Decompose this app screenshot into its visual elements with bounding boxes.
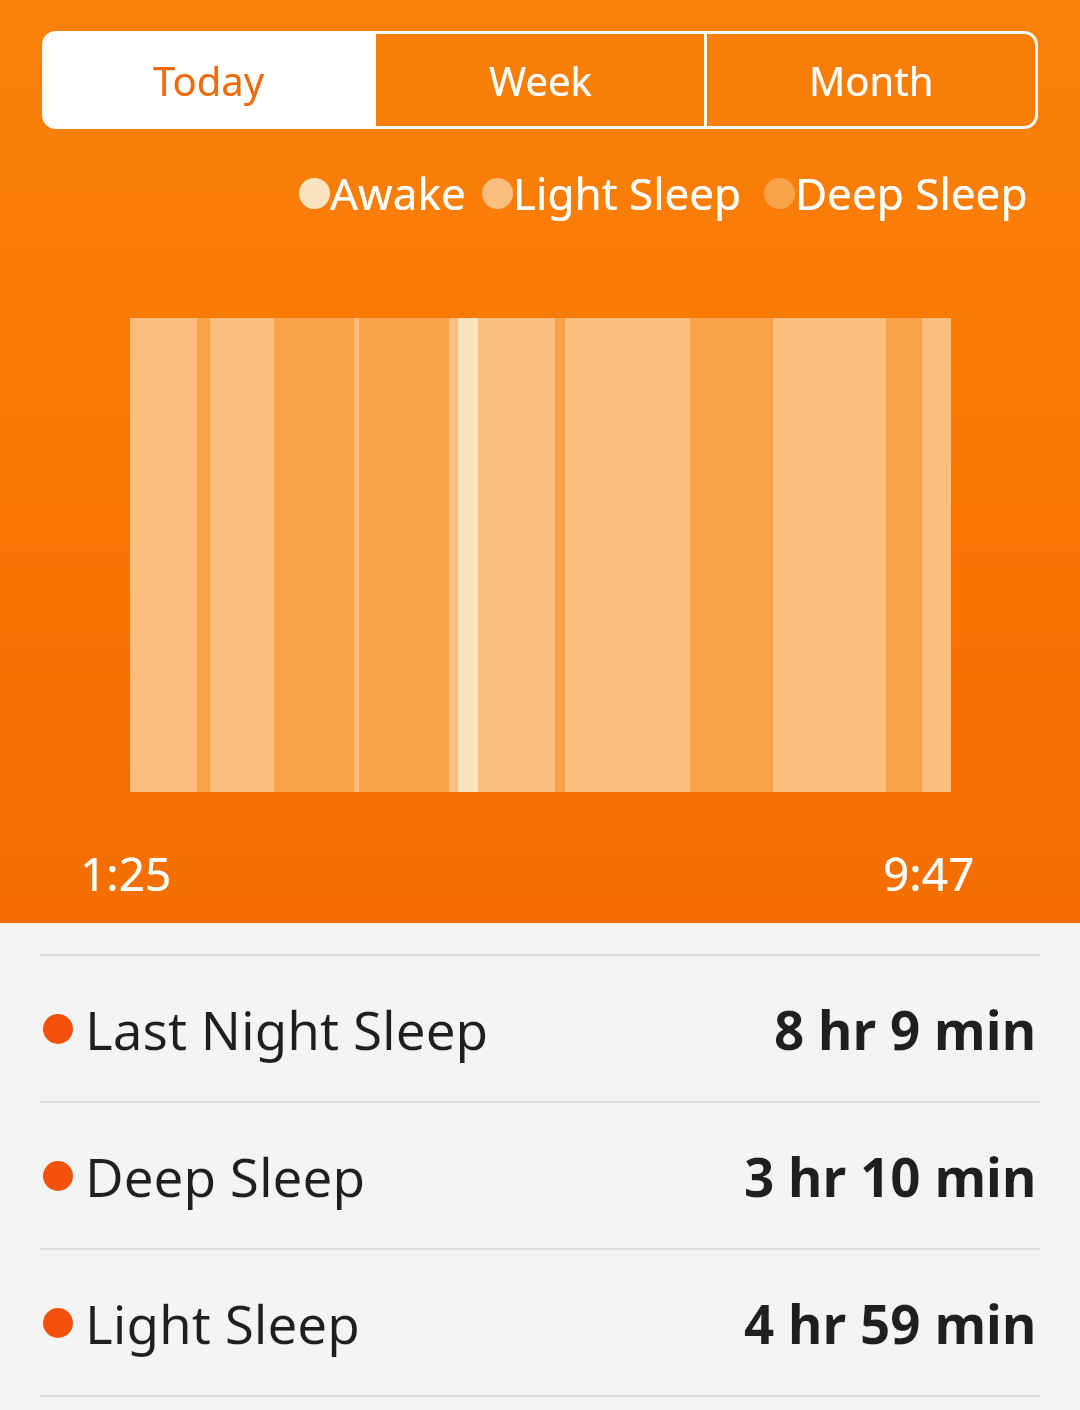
staticText: Month — [809, 53, 934, 107]
staticText: Light Sleep — [513, 163, 742, 223]
button[interactable]: Last Night Sleep — [0, 956, 1080, 1101]
staticText: 8 hr 9 min — [774, 993, 1037, 1065]
button[interactable]: Week — [376, 34, 704, 126]
staticText: 1:25 — [80, 842, 172, 905]
staticText: Deep Sleep — [85, 1140, 365, 1212]
staticText: 4 hr 59 min — [744, 1287, 1037, 1359]
staticText: Awake — [330, 163, 466, 223]
staticText: Deep Sleep — [795, 163, 1028, 223]
button[interactable]: Light Sleep — [0, 1250, 1080, 1395]
staticText: Week — [489, 53, 592, 107]
staticText: 3 hr 10 min — [744, 1140, 1037, 1212]
button[interactable]: Today — [45, 34, 373, 126]
staticText: Last Night Sleep — [85, 993, 489, 1065]
staticText: Today — [153, 53, 265, 107]
button[interactable]: Deep Sleep — [0, 1103, 1080, 1248]
staticText: 9:47 — [883, 842, 975, 905]
staticText: Light Sleep — [85, 1287, 360, 1359]
button[interactable]: Month — [707, 34, 1035, 126]
